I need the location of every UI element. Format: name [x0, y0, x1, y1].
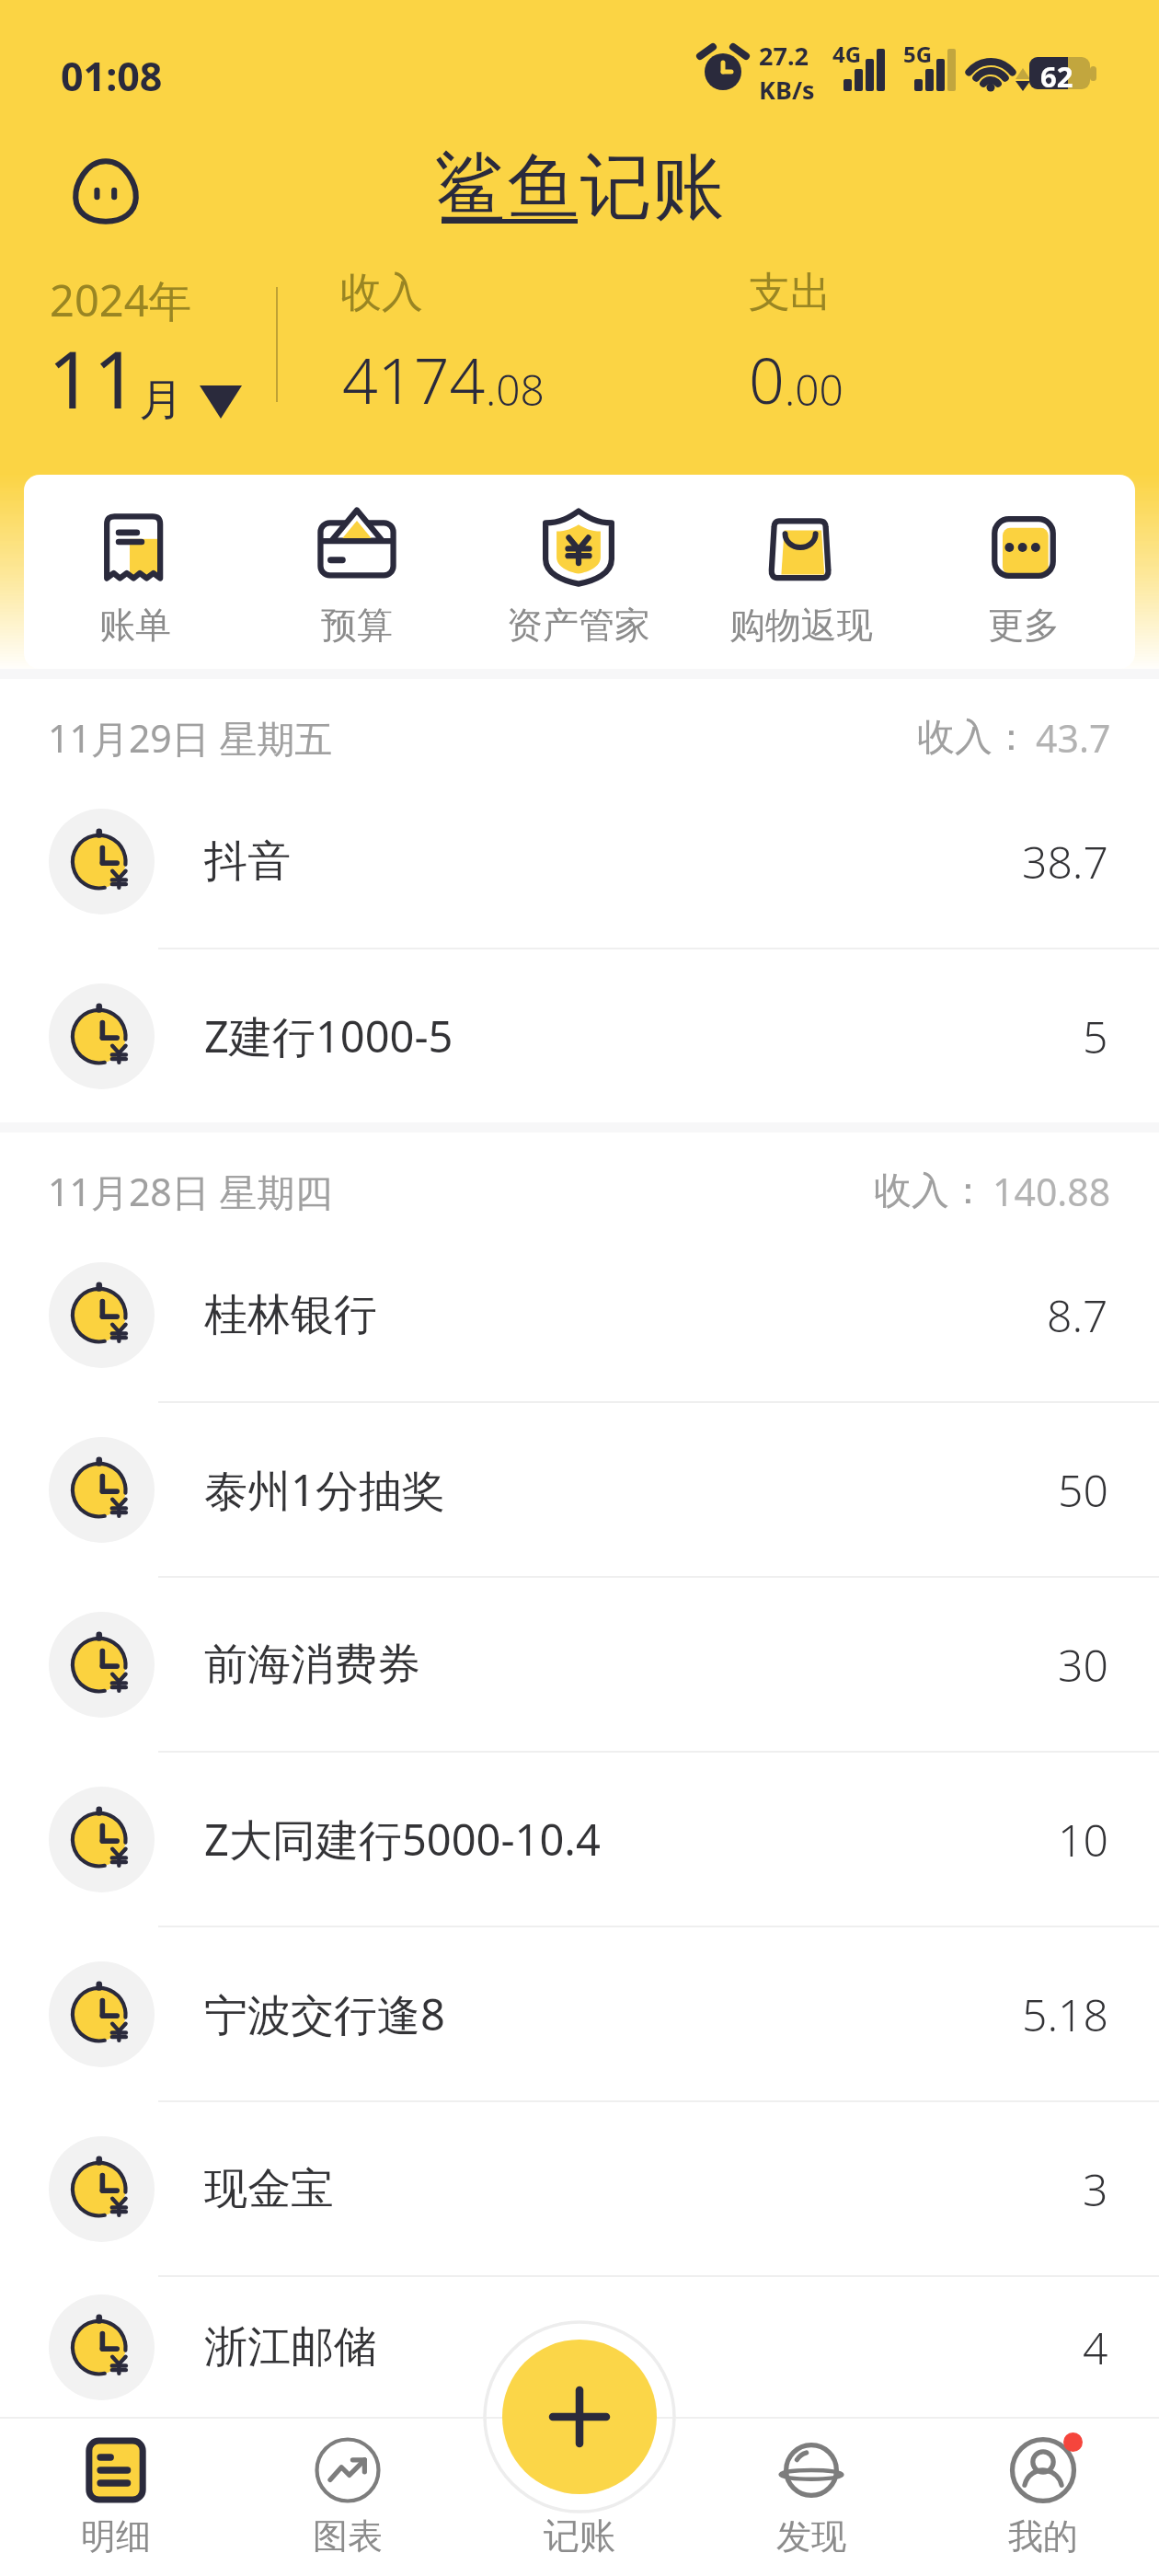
staticText: 我的: [1008, 2514, 1078, 2559]
staticText: 43.7: [1036, 712, 1111, 764]
staticText: 购物返现: [729, 603, 873, 648]
staticText: 浙江邮储: [204, 2320, 377, 2375]
staticText: 月: [139, 373, 183, 428]
staticText: Z大同建行5000-10.4: [204, 1810, 601, 1869]
staticText: 62: [1040, 57, 1073, 96]
button[interactable]: 记账: [464, 2419, 695, 2576]
staticText: 收入: [340, 267, 423, 319]
button[interactable]: 我的: [927, 2419, 1159, 2576]
staticText: KB/s: [759, 73, 815, 107]
staticText: 4: [1083, 2317, 1108, 2377]
staticText: 鲨鱼记账: [434, 143, 725, 233]
button[interactable]: 抖音: [0, 775, 1159, 948]
staticText: 4G: [832, 39, 862, 69]
button[interactable]: Z大同建行5000-10.4: [0, 1753, 1159, 1926]
button[interactable]: 预算: [246, 484, 467, 669]
staticText: 5: [1083, 1006, 1108, 1066]
staticText: .08: [486, 361, 545, 419]
staticText: 现金宝: [204, 2162, 334, 2216]
staticText: 5.18: [1022, 1984, 1108, 2044]
staticText: 资产管家: [507, 603, 650, 648]
staticText: 5G: [903, 39, 933, 69]
button[interactable]: 宁波交行逢8: [0, 1927, 1159, 2100]
staticText: 发现: [776, 2514, 846, 2559]
staticText: 30: [1058, 1635, 1108, 1695]
button[interactable]: 现金宝: [0, 2102, 1159, 2275]
staticText: 11月28日 星期四: [48, 1166, 333, 1217]
staticText: 0: [749, 337, 785, 422]
staticText: 8.7: [1047, 1285, 1108, 1345]
staticText: Z建行1000-5: [204, 1006, 453, 1065]
staticText: 收入：: [917, 714, 1030, 762]
staticText: 50: [1058, 1460, 1108, 1520]
button[interactable]: 明细: [0, 2419, 232, 2576]
staticText: 宁波交行逢8: [204, 1984, 445, 2043]
button[interactable]: 浙江邮储: [0, 2277, 1159, 2417]
staticText: 预算: [321, 603, 393, 648]
staticText: 10: [1058, 1810, 1108, 1869]
staticText: 140.88: [993, 1166, 1111, 1217]
staticText: 更多: [988, 603, 1060, 648]
staticText: 图表: [313, 2514, 383, 2559]
button[interactable]: 前海消费券: [0, 1578, 1159, 1751]
button[interactable]: Z建行1000-5: [0, 949, 1159, 1122]
button[interactable]: 账单: [24, 484, 246, 669]
button[interactable]: 更多: [912, 484, 1135, 669]
staticText: 前海消费券: [204, 1638, 420, 1692]
staticText: 明细: [81, 2514, 151, 2559]
button[interactable]: 11: [48, 324, 242, 431]
button[interactable]: 资产管家: [467, 484, 690, 669]
staticText: .00: [785, 361, 843, 419]
staticText: 桂林银行: [204, 1288, 377, 1342]
staticText: 抖音: [204, 834, 291, 889]
staticText: 账单: [99, 603, 171, 648]
staticText: 记账: [544, 2513, 615, 2559]
staticText: 01:08: [61, 49, 163, 103]
staticText: 4174: [342, 337, 486, 422]
staticText: 38.7: [1022, 832, 1108, 891]
button[interactable]: 桂林银行: [0, 1228, 1159, 1401]
staticText: 27.2: [759, 39, 809, 73]
button[interactable]: 发现: [695, 2419, 927, 2576]
button[interactable]: 图表: [232, 2419, 464, 2576]
staticText: 11: [48, 324, 139, 431]
staticText: 3: [1083, 2159, 1108, 2219]
staticText: 支出: [749, 267, 832, 319]
button[interactable]: 泰州1分抽奖: [0, 1403, 1159, 1576]
staticText: 11月29日 星期五: [48, 712, 333, 764]
button[interactable]: 购物返现: [690, 484, 912, 669]
button[interactable]: 记账 Add: [502, 2340, 657, 2494]
staticText: 泰州1分抽奖: [204, 1460, 445, 1519]
staticText: 收入：: [874, 1167, 987, 1215]
button[interactable]: Profile: [73, 158, 139, 224]
staticText: 2024年: [50, 270, 192, 329]
